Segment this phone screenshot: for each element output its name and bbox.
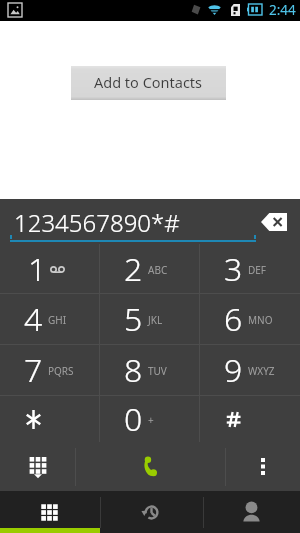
staticText: GHI (48, 313, 67, 327)
button[interactable]: 4 (0, 294, 100, 344)
button[interactable]: Add to Contacts (71, 66, 226, 100)
staticText: 1 (28, 247, 47, 291)
staticText: MNO (248, 313, 273, 327)
staticText: 0 (124, 397, 143, 441)
staticText: Add to Contacts (94, 72, 203, 92)
staticText: 5 (124, 297, 143, 341)
staticText: JKL (148, 313, 163, 327)
button[interactable]: 8 (100, 345, 200, 395)
button[interactable]: 7 (0, 345, 100, 395)
button[interactable]: 5 (100, 294, 200, 344)
staticText: WXYZ (248, 364, 275, 378)
staticText: 9 (224, 348, 243, 392)
staticText: 8 (124, 348, 143, 392)
staticText: DEF (248, 263, 267, 277)
staticText: ABC (148, 263, 168, 277)
button[interactable]: Call (76, 442, 225, 491)
button[interactable]: 3 (200, 244, 300, 293)
button[interactable] (0, 396, 100, 442)
button[interactable]: Hide dialpad (0, 442, 75, 491)
staticText: 2 (124, 247, 143, 291)
button[interactable]: More options (226, 442, 300, 491)
button[interactable]: 0 (100, 396, 200, 442)
staticText: TUV (148, 364, 167, 378)
button[interactable]: Backspace (250, 199, 300, 244)
button[interactable]: 6 (200, 294, 300, 344)
button[interactable]: Call history tab (101, 491, 203, 533)
staticText: PQRS (48, 364, 74, 378)
staticText: 3 (224, 247, 243, 291)
button[interactable]: Contacts tab (204, 491, 300, 533)
staticText: + (148, 413, 154, 427)
button[interactable]: 9 (200, 345, 300, 395)
button[interactable]: 1 (0, 244, 100, 293)
staticText: 4 (24, 297, 43, 341)
staticText: 7 (24, 348, 43, 392)
staticText: 1234567890*# (14, 206, 180, 239)
button[interactable]: Dialpad tab (0, 491, 100, 533)
staticText: 2:44 (269, 1, 296, 19)
button[interactable] (200, 396, 300, 442)
staticText: 6 (224, 297, 243, 341)
button[interactable]: 2 (100, 244, 200, 293)
